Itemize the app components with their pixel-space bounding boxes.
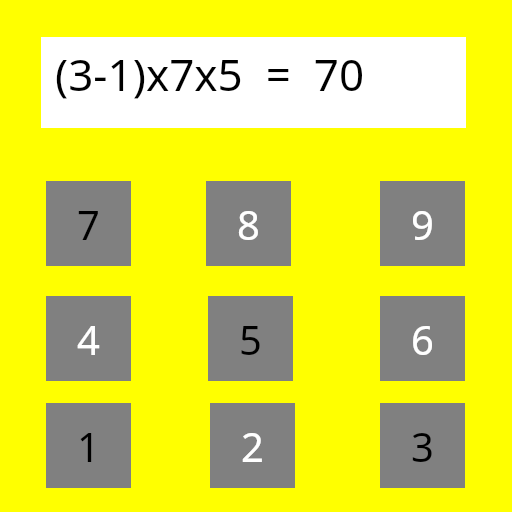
staticText: 9	[411, 197, 434, 251]
staticText: 8	[237, 197, 260, 251]
button[interactable]: 5	[208, 296, 293, 381]
button[interactable]: 7	[46, 181, 131, 266]
button[interactable]: (3-1)x7x5 = 70	[41, 37, 466, 128]
staticText: 7	[77, 197, 100, 251]
staticText: 6	[411, 312, 434, 366]
button[interactable]: 2	[210, 403, 295, 488]
button[interactable]: 3	[380, 403, 465, 488]
button[interactable]: 6	[380, 296, 465, 381]
staticText: (3-1)x7x5 = 70	[55, 44, 365, 104]
staticText: 3	[411, 419, 434, 473]
staticText: 4	[77, 312, 100, 366]
button[interactable]: 4	[46, 296, 131, 381]
staticText: 1	[77, 419, 100, 473]
staticText: 5	[239, 312, 262, 366]
button[interactable]: 8	[206, 181, 291, 266]
staticText: 2	[241, 419, 264, 473]
button[interactable]: 9	[380, 181, 465, 266]
button[interactable]: 1	[46, 403, 131, 488]
